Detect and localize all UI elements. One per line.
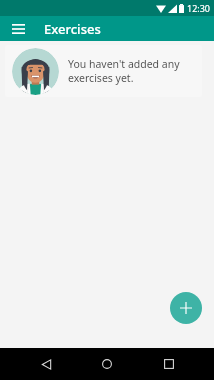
staticText: You haven't added any exercises yet. bbox=[68, 57, 180, 85]
button[interactable]: You haven't added any exercises yet. bbox=[5, 45, 202, 97]
button[interactable]: Recent apps bbox=[153, 348, 185, 380]
button[interactable]: Add exercise bbox=[170, 292, 202, 324]
staticText: 12:30 bbox=[187, 2, 211, 14]
button[interactable]: Back bbox=[30, 348, 62, 380]
staticText: Exercises bbox=[44, 20, 101, 38]
button[interactable]: Home bbox=[91, 348, 123, 380]
button[interactable]: Open navigation menu bbox=[8, 19, 28, 39]
